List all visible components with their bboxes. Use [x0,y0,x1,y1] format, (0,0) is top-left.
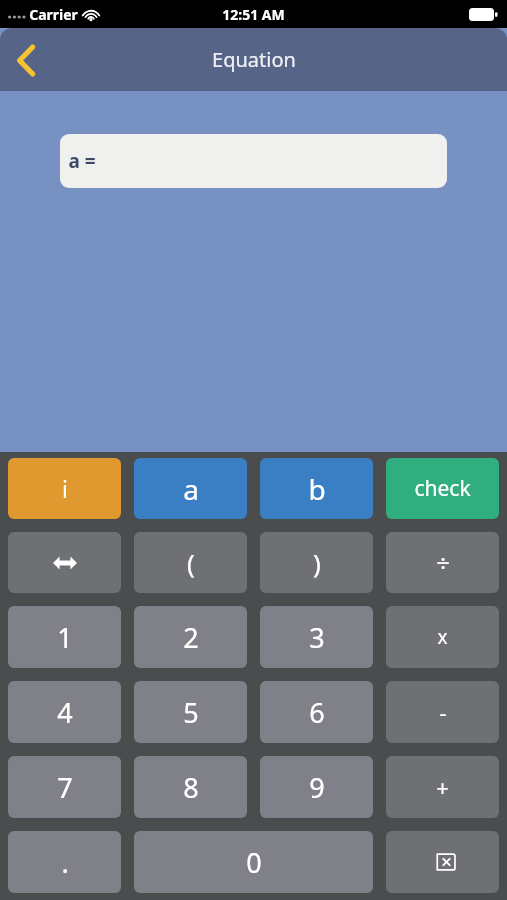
button[interactable]: 3 [260,606,373,668]
button[interactable]: 2 [134,606,247,668]
button[interactable]: 6 [260,681,373,743]
button[interactable]: ÷ [386,532,499,593]
button[interactable]: 9 [260,756,373,818]
staticText: a = [68,148,96,174]
staticText: 3 [309,619,325,656]
staticText: 12:51 AM [222,5,285,24]
staticText: ÷ [436,546,450,579]
staticText: 6 [309,694,325,731]
staticText: 0 [246,844,262,881]
button[interactable]: . [8,831,121,893]
staticText: check [414,474,471,503]
staticText: 7 [57,769,73,806]
staticText: 9 [309,769,325,806]
button[interactable]: + [386,756,499,818]
button[interactable]: x [386,606,499,668]
button[interactable]: a = [60,134,447,188]
staticText: 8 [183,769,199,806]
button[interactable]: check [386,458,499,519]
staticText: - [439,697,447,727]
button[interactable]: Back [0,34,52,86]
button[interactable]: a [134,458,247,519]
button[interactable]: 1 [8,606,121,668]
button[interactable]: - [386,681,499,743]
staticText: + [436,772,449,802]
staticText: Equation [212,46,296,73]
button[interactable]: 4 [8,681,121,743]
staticText: 2 [183,619,199,656]
staticText: a [183,470,199,508]
staticText: 4 [57,694,73,731]
staticText: ( [187,545,195,580]
button[interactable]: 8 [134,756,247,818]
button[interactable]: ( [134,532,247,593]
staticText: . [61,844,69,881]
button[interactable]: ) [260,532,373,593]
staticText: i [62,473,68,504]
button[interactable]: 0 [134,831,373,893]
button[interactable]: Backspace [386,831,499,893]
staticText: 1 [57,619,73,656]
button[interactable]: 7 [8,756,121,818]
button[interactable]: 5 [134,681,247,743]
staticText: x [437,624,448,650]
staticText: Carrier [29,5,78,24]
button[interactable]: i [8,458,121,519]
staticText: ) [313,545,321,580]
staticText: b [308,470,326,508]
button[interactable]: Swap [8,532,121,593]
button[interactable]: b [260,458,373,519]
staticText: 5 [183,694,199,731]
